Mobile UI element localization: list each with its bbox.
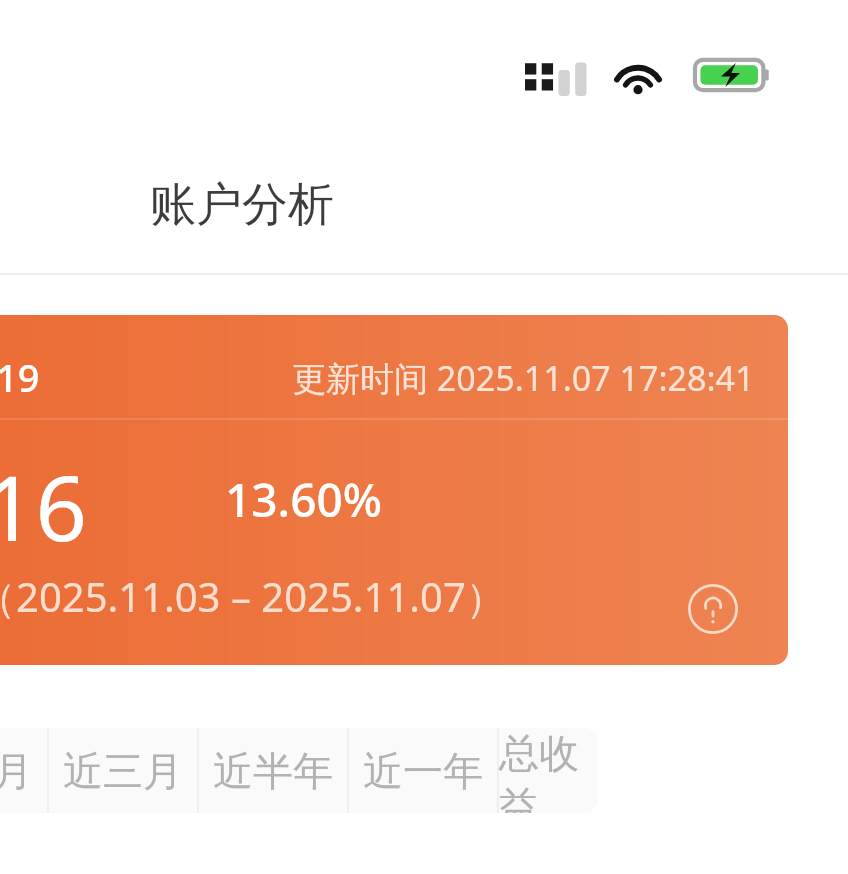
staticText: 账户分析 xyxy=(150,176,334,234)
staticText: 13.60% xyxy=(225,468,382,531)
staticText: （2025.11.03 – 2025.11.07） xyxy=(0,569,506,624)
staticText: 近半年 xyxy=(213,746,333,796)
staticText: 近一月 xyxy=(0,746,33,796)
button[interactable]: 19 xyxy=(0,315,788,665)
button[interactable]: 近一年 xyxy=(349,728,497,813)
staticText: 总收益 xyxy=(499,728,598,813)
staticText: 19 xyxy=(0,351,40,403)
button[interactable]: 近半年 xyxy=(199,728,347,813)
button[interactable]: 近一月 xyxy=(0,728,47,813)
button[interactable]: Help xyxy=(677,573,749,645)
staticText: .16 xyxy=(0,445,88,568)
staticText: 近三月 xyxy=(63,746,183,796)
button[interactable]: 近三月 xyxy=(49,728,197,813)
staticText: 近一年 xyxy=(363,746,483,796)
button[interactable]: 总收益 xyxy=(499,728,598,813)
staticText: 更新时间 2025.11.07 17:28:41 xyxy=(292,355,755,401)
